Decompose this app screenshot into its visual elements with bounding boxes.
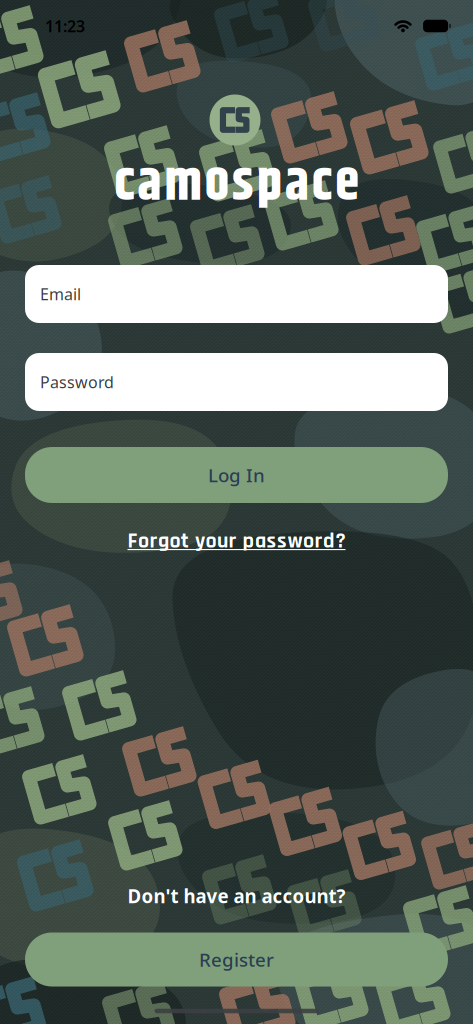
button[interactable]: Forgot your password? (127, 527, 345, 555)
staticText: Email (40, 283, 81, 305)
button[interactable]: Email (25, 265, 448, 323)
button[interactable]: Register (25, 932, 448, 986)
staticText: camospace (114, 142, 359, 226)
button[interactable]: Log In (25, 447, 448, 503)
staticText: Register (199, 947, 274, 972)
staticText: Log In (208, 463, 265, 487)
button[interactable]: Password (25, 353, 448, 411)
staticText: Forgot your password? (127, 527, 345, 555)
staticText: Password (40, 371, 114, 393)
staticText: Don't have an account? (127, 884, 345, 908)
staticText: 11:23 (45, 15, 85, 37)
